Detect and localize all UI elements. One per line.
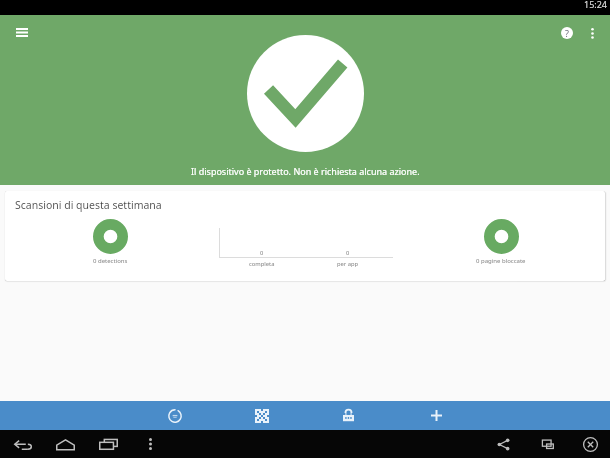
button[interactable]: Add: [415, 401, 457, 430]
button[interactable]: Cast: [528, 430, 568, 458]
staticText: Il dispositivo è protetto. Non è richies…: [191, 165, 420, 177]
button[interactable]: More options: [576, 15, 608, 51]
staticText: Scansioni di questa settimana: [15, 198, 162, 212]
staticText: 0 detections: [93, 257, 128, 265]
button[interactable]: Menu: [2, 15, 42, 51]
button[interactable]: QR code: [241, 401, 283, 430]
staticText: 0 pagine bloccate: [476, 257, 526, 265]
button[interactable]: Help: [549, 15, 585, 51]
button[interactable]: Back: [3, 430, 43, 458]
button[interactable]: Home: [45, 430, 85, 458]
button[interactable]: Scan: [154, 401, 196, 430]
staticText: completa: [249, 260, 275, 268]
button[interactable]: Menu: [130, 430, 170, 458]
staticText: per app: [337, 260, 359, 268]
staticText: ?: [565, 27, 569, 39]
staticText: 0: [346, 249, 350, 257]
button[interactable]: Lock: [327, 401, 369, 430]
button[interactable]: Recents: [88, 430, 128, 458]
staticText: 15:24: [584, 0, 608, 10]
staticText: 0: [260, 249, 264, 257]
button[interactable]: Close: [570, 430, 610, 458]
button[interactable]: Share: [483, 430, 523, 458]
